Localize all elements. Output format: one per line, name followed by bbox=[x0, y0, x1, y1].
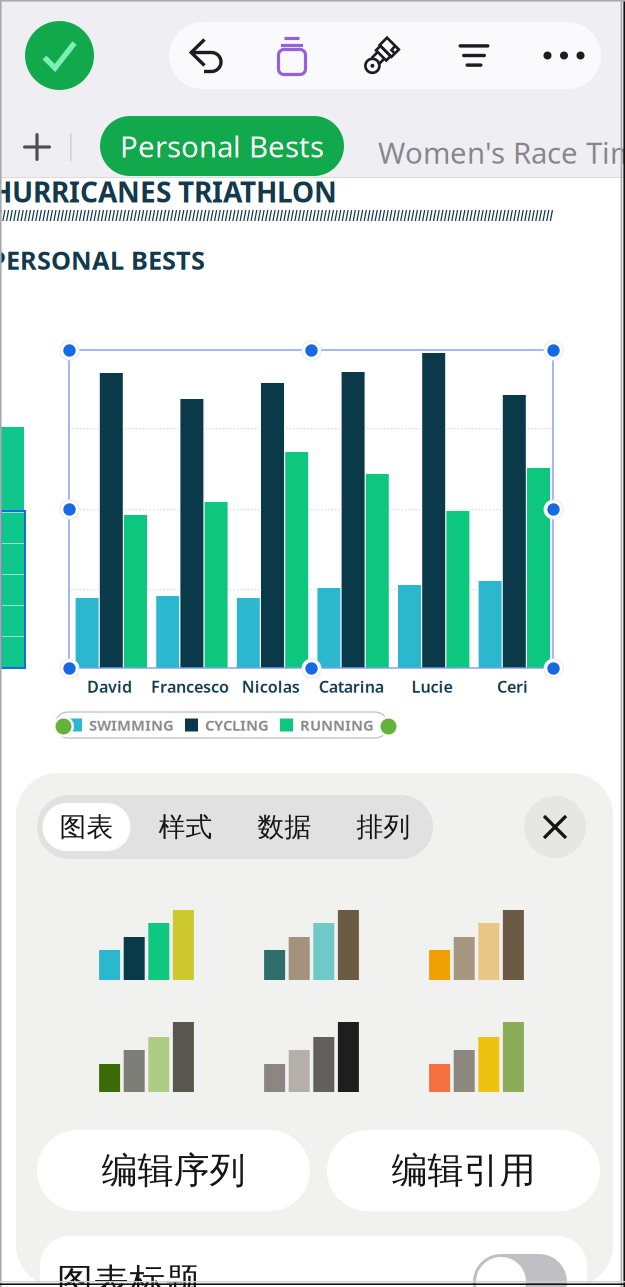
staticText: Personal Bests bbox=[120, 126, 324, 165]
button[interactable]: Undo bbox=[162, 22, 250, 89]
button[interactable]: 排列 bbox=[334, 795, 433, 859]
button[interactable]: 样式 bbox=[136, 795, 235, 859]
staticText: Lucie bbox=[411, 676, 452, 697]
staticText: 样式 bbox=[158, 811, 212, 843]
button[interactable]: More bbox=[520, 22, 608, 89]
staticText: 图表 bbox=[59, 811, 113, 843]
button[interactable]: 图表 bbox=[37, 795, 136, 859]
button[interactable]: Add sheet bbox=[20, 130, 54, 164]
button[interactable]: Done bbox=[25, 21, 94, 90]
button[interactable]: 图表标题 bbox=[40, 1236, 587, 1287]
staticText: Francesco bbox=[151, 676, 229, 697]
staticText: 排列 bbox=[356, 811, 410, 843]
staticText: Women's Race Time bbox=[378, 133, 625, 172]
button[interactable]: Format bbox=[338, 22, 426, 89]
staticText: 数据 bbox=[257, 811, 311, 843]
staticText: Nicolas bbox=[242, 676, 300, 697]
button[interactable]: Personal Bests bbox=[100, 116, 344, 176]
button[interactable]: Paste bbox=[248, 22, 336, 89]
staticText: David bbox=[87, 676, 132, 697]
button[interactable]: 编辑引用 bbox=[327, 1130, 600, 1211]
button[interactable]: 编辑序列 bbox=[37, 1130, 310, 1211]
staticText: PERSONAL BESTS bbox=[0, 243, 205, 277]
button[interactable]: 数据 bbox=[235, 795, 334, 859]
staticText: SWIMMING bbox=[89, 715, 174, 735]
staticText: 图表标题 bbox=[57, 1260, 201, 1287]
staticText: RUNNING bbox=[300, 715, 374, 735]
button[interactable]: Chart style 4 bbox=[99, 1022, 194, 1092]
button[interactable]: Chart style 1 bbox=[99, 910, 194, 980]
staticText: Catarina bbox=[319, 676, 384, 697]
button[interactable]: Chart style 2 bbox=[264, 910, 359, 980]
button[interactable]: Close bbox=[524, 796, 586, 858]
staticText: CYCLING bbox=[205, 715, 269, 735]
button[interactable]: Chart style 5 bbox=[264, 1022, 359, 1092]
staticText: HURRICANES TRIATHLON bbox=[0, 173, 337, 210]
button[interactable]: Chart style 6 bbox=[429, 1022, 524, 1092]
button[interactable]: Women's Race Time bbox=[378, 133, 625, 172]
staticText: Ceri bbox=[497, 676, 528, 697]
button[interactable]: Chart style 3 bbox=[429, 910, 524, 980]
button[interactable]: Arrange bbox=[430, 22, 518, 89]
staticText: 编辑序列 bbox=[101, 1148, 245, 1193]
staticText: 编辑引用 bbox=[391, 1148, 535, 1193]
